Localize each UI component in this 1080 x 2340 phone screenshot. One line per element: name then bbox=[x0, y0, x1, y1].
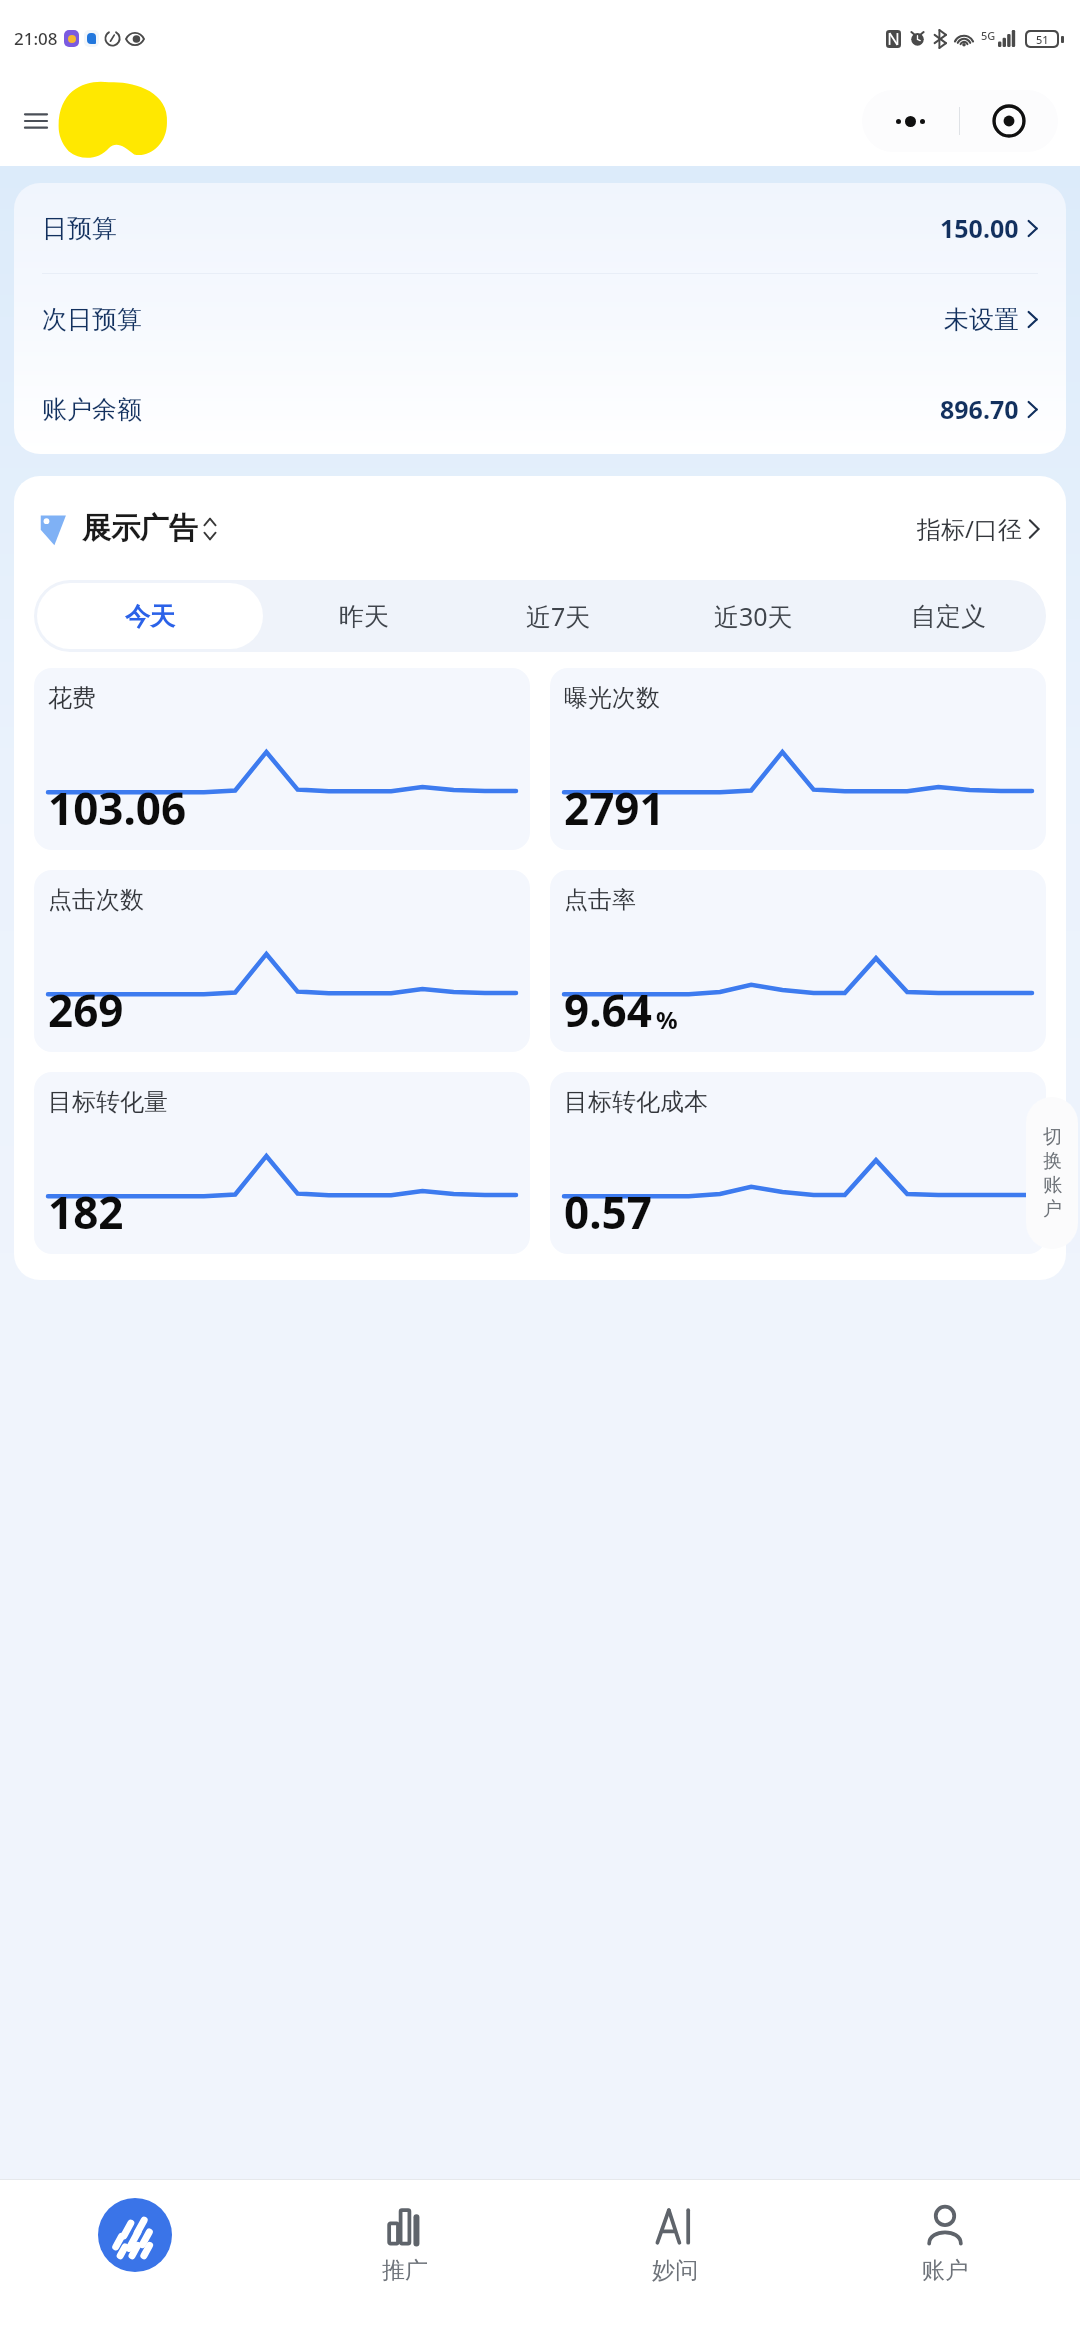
staticText: 妙问 bbox=[652, 2256, 698, 2285]
staticText: 指标/口径 bbox=[917, 512, 1022, 545]
staticText: 花费 bbox=[48, 683, 96, 713]
button[interactable]: Home bbox=[0, 2180, 270, 2340]
staticText: 近7天 bbox=[526, 599, 591, 633]
button[interactable]: 花费 bbox=[34, 668, 530, 850]
staticText: 点击率 bbox=[564, 885, 636, 915]
button[interactable]: 日预算 bbox=[14, 183, 1066, 273]
button[interactable]: 妙问 bbox=[540, 2180, 810, 2340]
staticText: 182 bbox=[48, 1182, 124, 1242]
button[interactable]: 指标/口径 bbox=[917, 512, 1040, 545]
staticText: 账户余额 bbox=[42, 394, 142, 425]
staticText: 账 bbox=[1043, 1173, 1062, 1197]
button[interactable]: 目标转化成本 bbox=[550, 1072, 1046, 1254]
staticText: 推广 bbox=[382, 2256, 428, 2285]
staticText: 次日预算 bbox=[42, 304, 142, 335]
button[interactable]: 推广 bbox=[270, 2180, 540, 2340]
staticText: 269 bbox=[48, 980, 124, 1040]
staticText: 150.00 bbox=[940, 211, 1019, 245]
staticText: 昨天 bbox=[339, 601, 389, 632]
staticText: 0.57 bbox=[564, 1182, 652, 1242]
staticText: 21:08 bbox=[14, 27, 58, 50]
staticText: 896.70 bbox=[940, 392, 1019, 426]
staticText: 曝光次数 bbox=[564, 683, 660, 713]
button[interactable]: 昨天 bbox=[269, 583, 458, 649]
staticText: % bbox=[656, 1003, 678, 1036]
staticText: 2791 bbox=[564, 778, 665, 838]
staticText: 日预算 bbox=[42, 213, 117, 244]
button[interactable]: 次日预算 bbox=[14, 274, 1066, 364]
staticText: 目标转化成本 bbox=[564, 1087, 708, 1117]
button[interactable]: 账户余额 bbox=[14, 364, 1066, 454]
button[interactable]: Close bbox=[960, 90, 1058, 152]
button[interactable]: 点击率 bbox=[550, 870, 1046, 1052]
button[interactable]: 目标转化量 bbox=[34, 1072, 530, 1254]
staticText: 5G bbox=[981, 28, 996, 43]
button[interactable]: More options bbox=[862, 90, 959, 152]
staticText: 近30天 bbox=[714, 599, 793, 633]
staticText: 展示广告 bbox=[82, 510, 198, 547]
staticText: 今天 bbox=[125, 601, 175, 632]
button[interactable]: 点击次数 bbox=[34, 870, 530, 1052]
staticText: 51 bbox=[1036, 32, 1049, 46]
button[interactable]: 近30天 bbox=[659, 583, 848, 649]
staticText: 自定义 bbox=[911, 601, 986, 632]
button[interactable]: 今天 bbox=[37, 583, 263, 649]
staticText: 9.64 bbox=[564, 980, 652, 1040]
button[interactable]: 切 bbox=[1026, 1097, 1078, 1249]
staticText: 换 bbox=[1043, 1149, 1062, 1173]
staticText: 账户 bbox=[922, 2256, 968, 2285]
staticText: 切 bbox=[1043, 1125, 1062, 1149]
button[interactable]: Menu bbox=[14, 99, 58, 143]
button[interactable]: 近7天 bbox=[464, 583, 653, 649]
staticText: 点击次数 bbox=[48, 885, 144, 915]
button[interactable]: 账户 bbox=[810, 2180, 1080, 2340]
staticText: 户 bbox=[1043, 1197, 1062, 1221]
button[interactable]: 曝光次数 bbox=[550, 668, 1046, 850]
button[interactable]: 展示广告 bbox=[40, 510, 217, 547]
staticText: 未设置 bbox=[944, 304, 1019, 335]
staticText: 目标转化量 bbox=[48, 1087, 168, 1117]
button[interactable]: 自定义 bbox=[854, 583, 1043, 649]
staticText: 103.06 bbox=[48, 778, 187, 838]
